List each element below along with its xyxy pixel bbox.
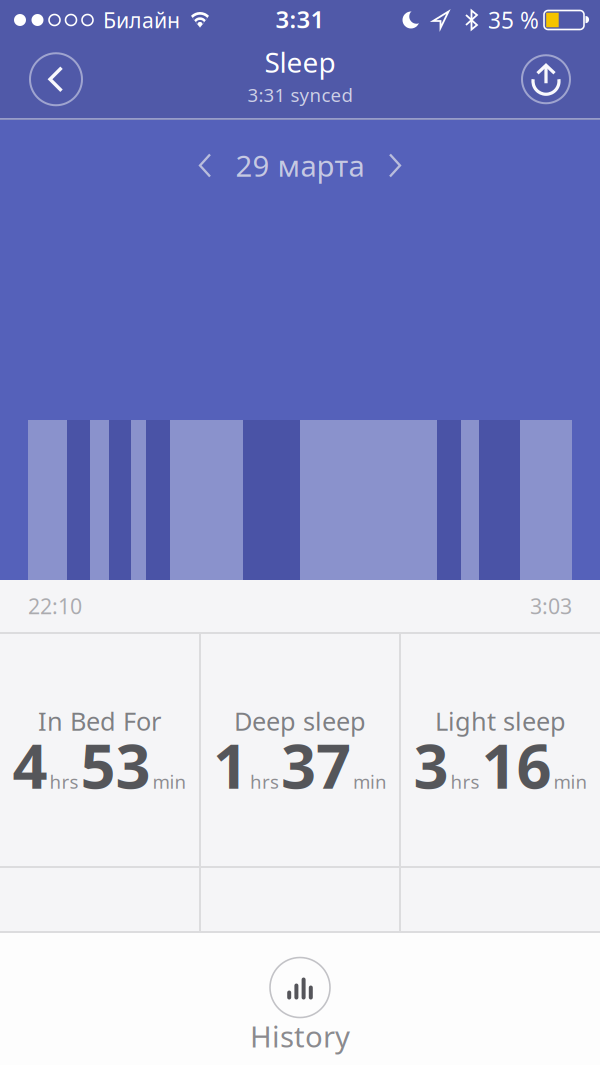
staticText: 4 — [12, 724, 47, 806]
staticText: min — [152, 769, 186, 794]
staticText: 53 — [80, 724, 150, 806]
staticText: 37 — [281, 724, 351, 806]
staticText: 1 — [213, 724, 248, 806]
staticText: In Bed For — [38, 704, 161, 738]
staticText: Билайн — [103, 6, 180, 34]
staticText: 29 марта — [235, 146, 364, 185]
staticText: min — [553, 769, 587, 794]
staticText: 22:10 — [28, 592, 82, 620]
staticText: Sleep — [264, 43, 335, 80]
staticText: Deep sleep — [234, 704, 366, 738]
staticText: hrs — [250, 769, 279, 794]
staticText: 3:31 — [275, 3, 324, 35]
staticText: 35 % — [488, 5, 539, 35]
staticText: 3:31 synced — [247, 82, 352, 107]
staticText: Light sleep — [435, 704, 566, 738]
staticText: min — [353, 769, 387, 794]
staticText: hrs — [450, 769, 479, 794]
staticText: History — [250, 1016, 350, 1055]
staticText: 3 — [413, 724, 448, 806]
staticText: 16 — [481, 724, 551, 806]
staticText: 3:03 — [530, 592, 572, 620]
staticText: hrs — [49, 769, 78, 794]
